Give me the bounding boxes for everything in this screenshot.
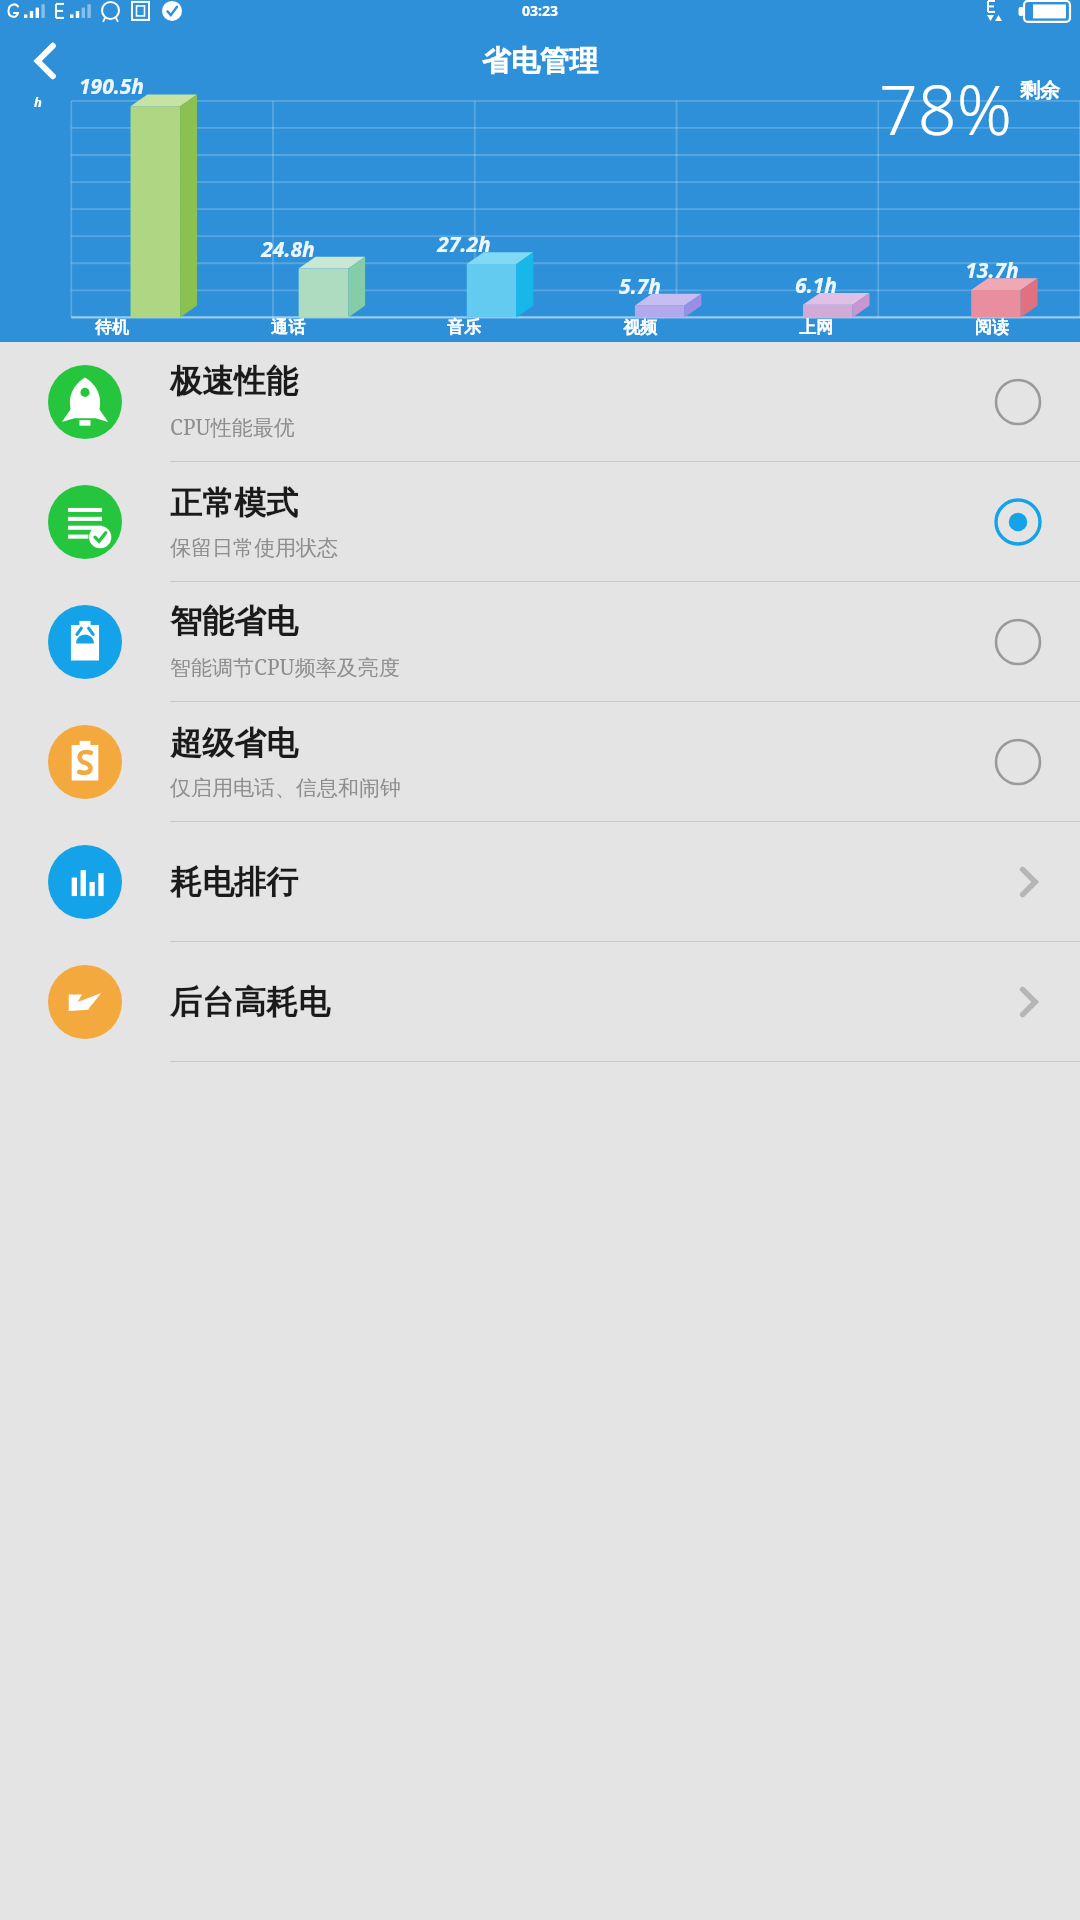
staticText: 智能调节CPU频率及亮度 [170,653,400,682]
staticText: 智能省电 [170,601,298,641]
button[interactable]: 超级省电 [0,702,1080,821]
staticText: 5.7h [619,272,661,301]
staticText: 6.1h [795,271,837,300]
staticText: 03:23 [522,1,558,20]
staticText: 27.2h [437,230,491,259]
staticText: 仅启用电话、信息和闹钟 [170,775,401,801]
staticText: 保留日常使用状态 [170,535,338,561]
staticText: 正常模式 [170,483,298,523]
button[interactable]: Back [10,25,82,97]
staticText: 音乐 [447,317,481,338]
button[interactable]: 极速性能 [0,342,1080,461]
staticText: 视频 [623,317,657,338]
staticText: 耗电排行 [170,862,975,902]
staticText: 待机 [95,317,129,338]
staticText: 超级省电 [170,723,298,763]
staticText: CPU性能最优 [170,413,295,442]
button[interactable]: 正常模式 [0,462,1080,581]
staticText: 阅读 [975,317,1009,338]
staticText: 省电管理 [482,43,598,80]
staticText: 24.8h [261,235,315,264]
staticText: h [34,93,42,111]
staticText: 上网 [799,317,833,338]
staticText: 13.7h [965,256,1019,285]
staticText: 剩余 [1020,78,1060,103]
staticText: 极速性能 [170,361,298,401]
button[interactable]: 后台高耗电 [0,942,1080,1061]
button[interactable]: 耗电排行 [0,822,1080,941]
staticText: 78% [879,62,1012,155]
staticText: 后台高耗电 [170,982,975,1022]
staticText: 通话 [271,317,305,338]
button[interactable]: 智能省电 [0,582,1080,701]
staticText: 190.5h [79,72,144,101]
